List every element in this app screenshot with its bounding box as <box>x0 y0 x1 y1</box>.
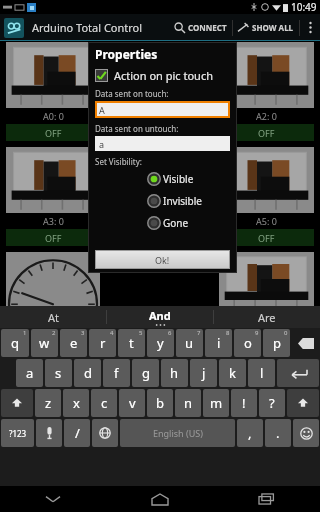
button[interactable]: j <box>190 359 217 387</box>
button[interactable]: Back <box>0 486 106 512</box>
button[interactable]: f <box>103 359 130 387</box>
staticText: Data sent on untouch: <box>95 123 179 134</box>
button[interactable]: w <box>31 329 58 357</box>
staticText: s <box>55 364 62 382</box>
staticText: e <box>70 334 78 352</box>
staticText: o <box>244 334 252 352</box>
button[interactable]: Voice input <box>36 419 62 447</box>
button[interactable]: Emoji <box>293 419 319 447</box>
button[interactable]: Relay image A2: 0 <box>219 42 314 108</box>
button[interactable]: r <box>89 329 116 357</box>
button[interactable]: Invisible <box>95 190 230 212</box>
button[interactable]: Relay image A3: 0 <box>6 147 100 213</box>
button[interactable]: Visible <box>95 168 230 190</box>
staticText: a <box>99 138 105 150</box>
button[interactable]: Change keyboard language <box>92 419 118 447</box>
button[interactable]: c <box>91 389 117 417</box>
button[interactable]: ? <box>259 389 285 417</box>
staticText: x <box>73 394 80 412</box>
button[interactable]: a <box>95 136 230 151</box>
button[interactable]: m <box>203 389 229 417</box>
staticText: j <box>202 364 206 382</box>
button[interactable]: y <box>147 329 174 357</box>
button[interactable]: More options <box>300 14 320 41</box>
staticText: English (US) <box>153 427 203 439</box>
button[interactable]: At <box>0 306 106 328</box>
staticText: m <box>210 394 223 412</box>
button[interactable]: l <box>248 359 275 387</box>
button[interactable]: Shift <box>287 389 319 417</box>
staticText: u <box>185 334 194 352</box>
button[interactable]: t <box>118 329 145 357</box>
staticText: 7 <box>197 329 201 337</box>
button[interactable]: Action on pic touch <box>95 68 230 83</box>
button[interactable]: ! <box>231 389 257 417</box>
button[interactable]: CONNECT <box>169 14 232 41</box>
staticText: Action on pic touch <box>114 68 213 83</box>
staticText: OFF <box>258 232 275 244</box>
staticText: t <box>129 334 134 352</box>
button[interactable]: Backspace <box>292 329 319 357</box>
button[interactable]: And <box>107 306 213 328</box>
staticText: A2: 0 <box>256 110 277 122</box>
button[interactable]: n <box>175 389 201 417</box>
button[interactable]: Enter <box>277 359 319 387</box>
button[interactable]: OFF <box>6 229 100 246</box>
staticText: A0: 0 <box>43 110 64 122</box>
button[interactable]: x <box>63 389 89 417</box>
staticText: 5 <box>139 329 143 337</box>
button[interactable]: s <box>45 359 72 387</box>
button[interactable]: Are <box>214 306 320 328</box>
staticText: A3: 0 <box>43 215 64 227</box>
staticText: SHOW ALL <box>252 22 294 33</box>
button[interactable]: , <box>237 419 263 447</box>
button[interactable]: OFF <box>6 124 100 141</box>
staticText: / <box>75 424 80 442</box>
button[interactable]: English (US) <box>120 419 235 447</box>
button[interactable]: / <box>64 419 90 447</box>
button[interactable]: z <box>35 389 61 417</box>
button[interactable]: d <box>74 359 101 387</box>
button[interactable]: g <box>132 359 159 387</box>
button[interactable]: Relay image A5: 0 <box>219 147 314 213</box>
button[interactable]: o <box>234 329 261 357</box>
staticText: c <box>101 394 108 412</box>
button[interactable]: h <box>161 359 188 387</box>
button[interactable]: ?123 <box>1 419 34 447</box>
staticText: Visible <box>163 172 194 186</box>
button[interactable]: i <box>205 329 232 357</box>
button[interactable]: Recent apps <box>213 486 320 512</box>
button[interactable]: Home <box>106 486 213 512</box>
button[interactable]: q <box>1 329 29 357</box>
staticText: ! <box>242 394 246 412</box>
button[interactable]: SHOW ALL <box>233 14 299 41</box>
button[interactable]: p <box>263 329 290 357</box>
staticText: l <box>260 364 264 382</box>
staticText: p <box>273 334 281 352</box>
staticText: Set Visibility: <box>95 156 142 167</box>
staticText: 10:49 <box>291 0 317 14</box>
staticText: w <box>39 334 50 352</box>
staticText: k <box>229 364 236 382</box>
button[interactable]: b <box>147 389 173 417</box>
button[interactable]: Gone <box>95 212 230 234</box>
staticText: 4 <box>110 329 114 337</box>
button[interactable]: Ok! <box>95 250 230 269</box>
button[interactable]: OFF <box>219 229 314 246</box>
button[interactable]: . <box>265 419 291 447</box>
staticText: OFF <box>45 127 62 139</box>
staticText: , <box>248 424 252 442</box>
staticText: Invisible <box>163 194 202 208</box>
button[interactable]: a <box>16 359 43 387</box>
staticText: b <box>156 394 164 412</box>
button[interactable]: v <box>119 389 145 417</box>
button[interactable]: u <box>176 329 203 357</box>
button[interactable]: A <box>95 101 230 118</box>
button[interactable]: k <box>219 359 246 387</box>
button[interactable]: Shift <box>1 389 33 417</box>
button[interactable]: OFF <box>219 124 314 141</box>
button[interactable]: e <box>60 329 87 357</box>
staticText: q <box>11 334 19 352</box>
staticText: OFF <box>258 127 275 139</box>
button[interactable]: Relay image A0: 0 <box>6 42 100 108</box>
